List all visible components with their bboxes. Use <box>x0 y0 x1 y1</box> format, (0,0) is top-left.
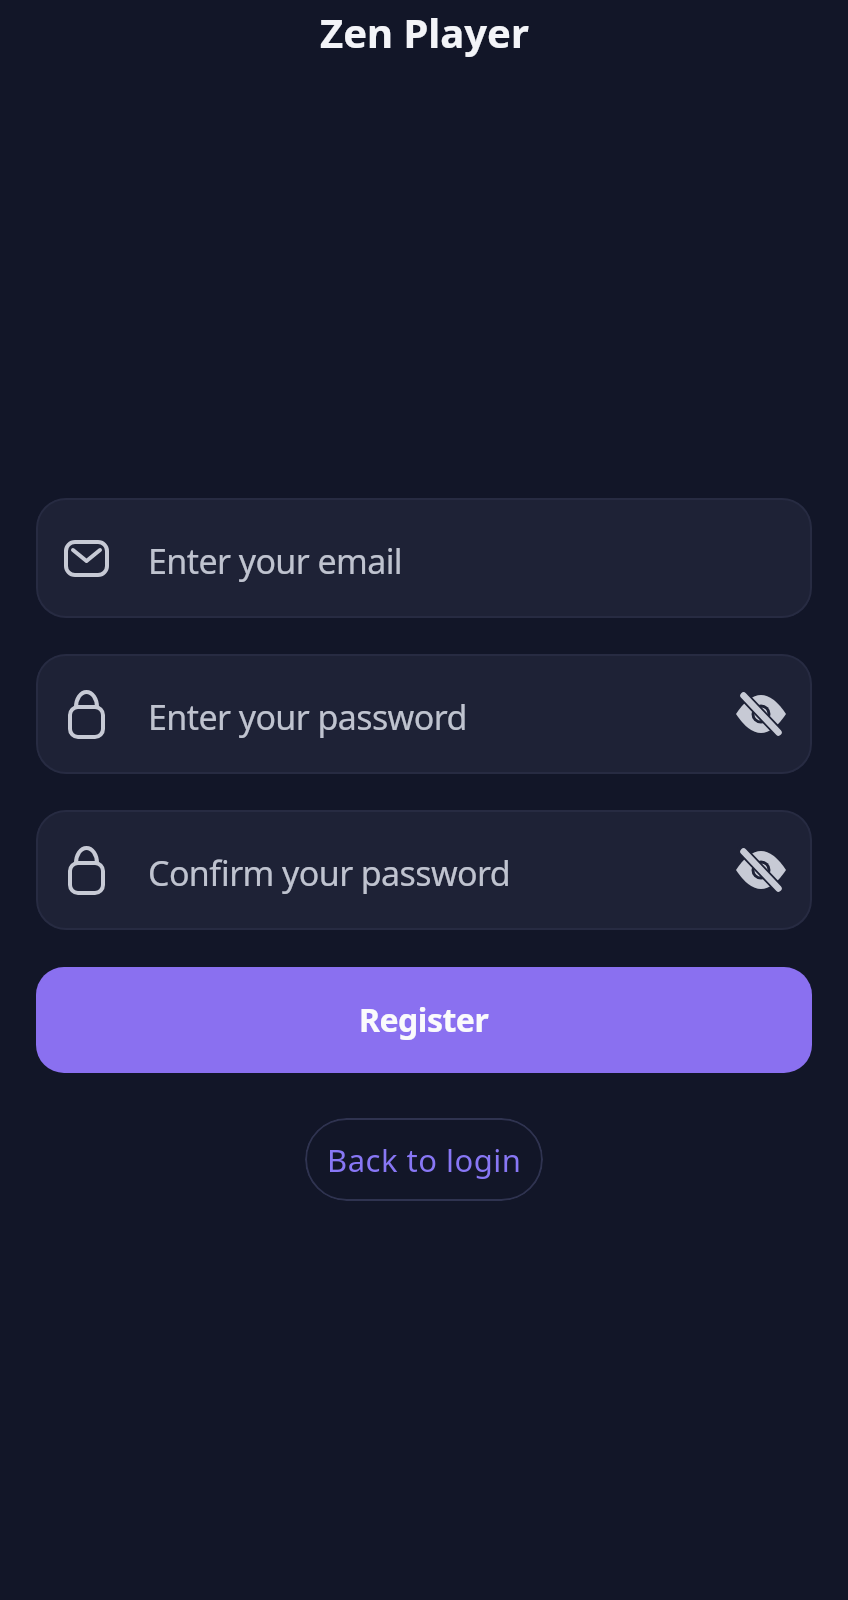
button[interactable]: Enter your email <box>36 498 812 618</box>
staticText: Register <box>359 998 489 1042</box>
button[interactable]: Register <box>36 967 812 1073</box>
staticText: Enter your password <box>148 694 467 740</box>
staticText: Enter your email <box>148 538 403 584</box>
button[interactable]: Enter your password <box>36 654 812 774</box>
staticText: Back to login <box>327 1139 522 1181</box>
staticText: Zen Player <box>320 5 529 59</box>
button[interactable] <box>735 850 787 890</box>
button[interactable]: Back to login <box>305 1118 543 1201</box>
staticText: Confirm your password <box>148 850 511 896</box>
button[interactable] <box>735 694 787 734</box>
button[interactable]: Confirm your password <box>36 810 812 930</box>
